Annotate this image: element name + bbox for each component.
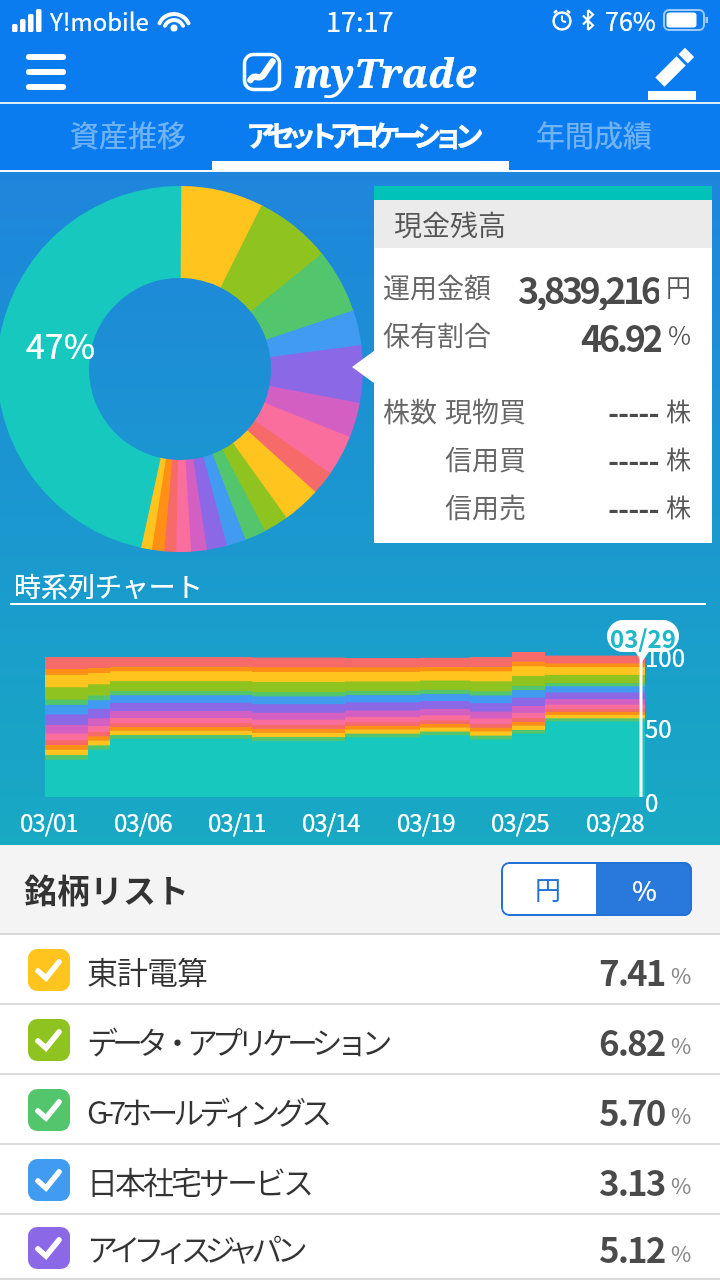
- staticText: 03/19: [397, 804, 455, 839]
- staticText: 株: [666, 392, 692, 428]
- staticText: 株数: [383, 391, 437, 430]
- button[interactable]: アイフィスジャパン: [0, 1215, 720, 1280]
- staticText: G-7ホールディングス: [87, 1088, 328, 1133]
- staticText: 0: [645, 784, 659, 819]
- staticText: 47%: [26, 320, 96, 369]
- staticText: %: [671, 1168, 692, 1200]
- staticText: 時系列チャート: [14, 566, 203, 605]
- staticText: 17:17: [326, 1, 394, 40]
- staticText: 03/14: [302, 804, 360, 839]
- button[interactable]: アセットアロケーション: [206, 104, 516, 172]
- staticText: -----: [608, 389, 659, 432]
- staticText: 50: [645, 710, 672, 745]
- staticText: 東計電算: [87, 948, 207, 993]
- staticText: データ・アプリケーション: [87, 1018, 387, 1063]
- staticText: %: [632, 870, 657, 909]
- staticText: 5.12: [599, 1222, 665, 1273]
- button[interactable]: 資産推移: [20, 104, 236, 172]
- staticText: %: [671, 1098, 692, 1130]
- staticText: 5.70: [599, 1085, 665, 1136]
- staticText: 03/01: [20, 804, 78, 839]
- staticText: 3,839,216: [518, 262, 659, 310]
- staticText: 銘柄リスト: [24, 865, 189, 913]
- staticText: -----: [608, 437, 659, 480]
- button[interactable]: 年間成績: [506, 104, 682, 172]
- button[interactable]: 東計電算: [0, 935, 720, 1005]
- staticText: 年間成績: [536, 113, 653, 155]
- staticText: 信用売: [445, 487, 526, 526]
- staticText: 保有割合: [383, 315, 491, 354]
- staticText: 円: [535, 870, 562, 908]
- staticText: 100: [645, 639, 685, 674]
- button[interactable]: 日本社宅サービス: [0, 1145, 720, 1215]
- staticText: myTrade: [293, 45, 477, 99]
- button[interactable]: データ・アプリケーション: [0, 1005, 720, 1075]
- staticText: 6.82: [599, 1015, 665, 1066]
- button[interactable]: 円: [501, 862, 596, 916]
- staticText: %: [671, 1236, 692, 1268]
- staticText: 信用買: [445, 439, 526, 478]
- button[interactable]: G-7ホールディングス: [0, 1075, 720, 1145]
- staticText: 03/25: [491, 804, 549, 839]
- staticText: Y!mobile: [50, 3, 149, 38]
- staticText: %: [671, 958, 692, 990]
- staticText: アイフィスジャパン: [87, 1225, 301, 1270]
- button[interactable]: [646, 44, 698, 100]
- staticText: 03/29: [610, 620, 676, 652]
- staticText: 資産推移: [70, 113, 187, 155]
- staticText: 7.41: [599, 945, 665, 996]
- staticText: 03/06: [114, 804, 172, 839]
- staticText: 株: [666, 488, 692, 524]
- button[interactable]: [22, 48, 70, 96]
- staticText: 株: [666, 440, 692, 476]
- staticText: 運用金額: [383, 267, 491, 306]
- staticText: 円: [666, 268, 692, 304]
- staticText: 46.92: [581, 310, 661, 358]
- button[interactable]: %: [596, 862, 692, 916]
- staticText: 現金残高: [394, 204, 507, 245]
- staticText: -----: [608, 485, 659, 528]
- staticText: 日本社宅サービス: [87, 1158, 311, 1203]
- staticText: 03/11: [208, 804, 266, 839]
- staticText: 3.13: [599, 1155, 665, 1206]
- staticText: アセットアロケーション: [246, 113, 476, 155]
- staticText: 03/28: [586, 804, 644, 839]
- staticText: 現物買: [445, 391, 526, 430]
- staticText: 76%: [605, 2, 656, 38]
- staticText: %: [671, 1028, 692, 1060]
- staticText: %: [668, 316, 692, 352]
